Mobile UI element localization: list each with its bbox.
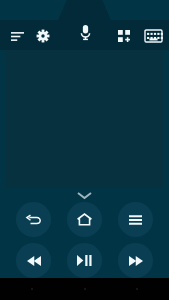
button[interactable]: Voice search xyxy=(73,20,97,44)
button[interactable]: Collapse xyxy=(0,188,169,202)
button[interactable]: Back xyxy=(16,202,51,237)
button[interactable]: Home xyxy=(67,202,102,237)
button[interactable]: Fast forward xyxy=(118,243,153,278)
button[interactable]: Rewind xyxy=(16,243,51,278)
button[interactable]: Recents xyxy=(118,202,153,237)
button[interactable]: Apps xyxy=(113,25,135,47)
button[interactable]: Settings xyxy=(32,25,54,47)
button[interactable]: Menu xyxy=(6,25,28,47)
button[interactable]: Play or pause xyxy=(67,243,102,278)
button[interactable]: Keyboard xyxy=(141,24,165,48)
